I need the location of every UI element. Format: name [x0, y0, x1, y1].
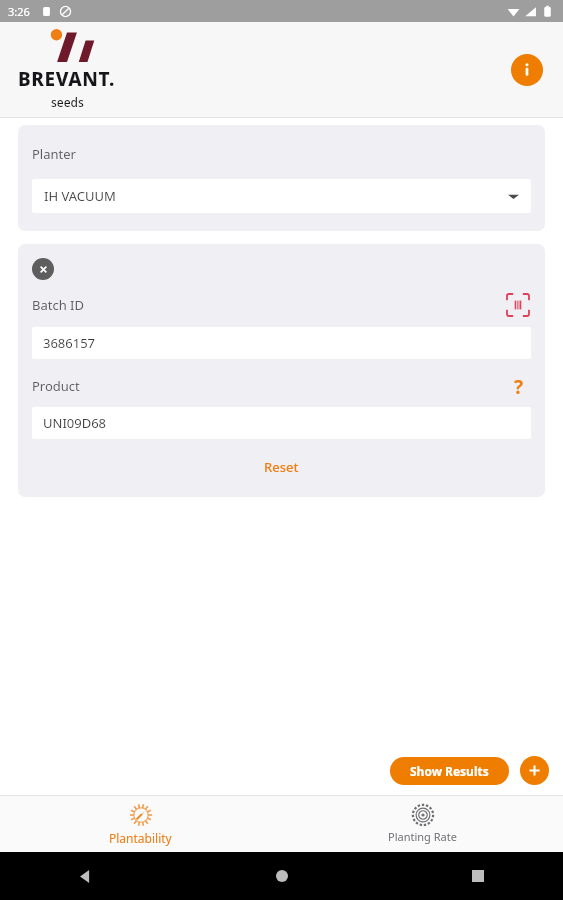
staticText: Reset [264, 458, 299, 476]
staticText: 3:26 [8, 4, 30, 19]
button[interactable]: Recent apps [463, 861, 493, 891]
staticText: seeds [51, 94, 84, 110]
button[interactable]: 3686157 [32, 327, 531, 359]
button[interactable]: Show Results [390, 757, 509, 785]
button[interactable]: Plantability [0, 796, 281, 852]
button[interactable]: Planting Rate [281, 796, 563, 852]
staticText: Show Results [410, 763, 489, 779]
button[interactable]: Help [507, 374, 531, 398]
staticText: Planting Rate [388, 829, 457, 844]
staticText: UNI09D68 [43, 414, 107, 432]
staticText: 3686157 [43, 334, 96, 352]
staticText: IH VACUUM [44, 187, 116, 205]
button[interactable]: Reset [32, 453, 531, 481]
staticText: Product [32, 377, 80, 395]
staticText: BREVANT. [18, 66, 116, 92]
button[interactable]: Information [511, 54, 543, 86]
staticText: ? [514, 374, 524, 398]
button[interactable]: Add [520, 756, 549, 785]
button[interactable]: Scan barcode [505, 292, 531, 318]
staticText: Batch ID [32, 296, 84, 314]
staticText: Plantability [109, 830, 172, 846]
button[interactable]: Home [267, 861, 297, 891]
button[interactable]: IH VACUUM [32, 179, 531, 213]
button[interactable]: UNI09D68 [32, 407, 531, 439]
button[interactable]: Back [70, 861, 100, 891]
button[interactable]: Close [32, 258, 54, 280]
staticText: Planter [32, 145, 76, 163]
